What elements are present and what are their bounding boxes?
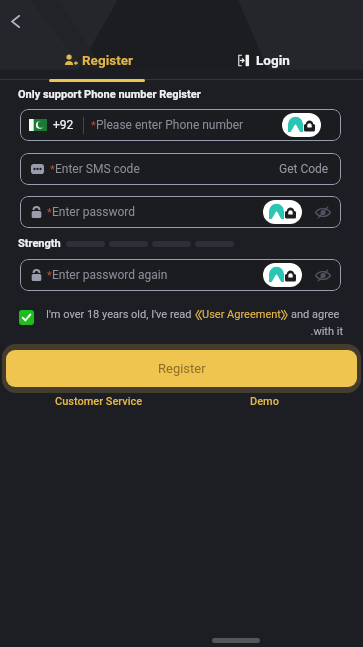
- staticText: Enter password again: [52, 268, 168, 282]
- button[interactable]: Back: [0, 5, 31, 37]
- button[interactable]: Show password: [313, 265, 333, 285]
- staticText: *: [91, 119, 96, 132]
- button[interactable]: Get Code: [279, 162, 329, 176]
- button[interactable]: Register: [64, 49, 133, 71]
- staticText: Customer Service: [55, 395, 143, 408]
- staticText: Enter SMS code: [55, 162, 140, 176]
- staticText: .with it: [46, 325, 343, 338]
- button[interactable]: *: [20, 153, 341, 185]
- button[interactable]: Agree to terms: [19, 310, 34, 325]
- staticText: Get Code: [279, 162, 329, 176]
- button[interactable]: Login: [238, 49, 290, 71]
- staticText: User Agreement: [202, 308, 281, 321]
- staticText: *: [47, 269, 52, 282]
- staticText: Enter password: [52, 205, 136, 219]
- button[interactable]: +92: [20, 109, 341, 141]
- staticText: *: [50, 163, 55, 176]
- button[interactable]: Security verification: [282, 113, 321, 137]
- staticText: Please enter Phone number: [96, 118, 244, 132]
- button[interactable]: *: [20, 196, 341, 228]
- button[interactable]: Security verification: [263, 200, 302, 224]
- button[interactable]: Security verification: [263, 263, 302, 287]
- button[interactable]: Show password: [313, 202, 333, 222]
- staticText: Register: [158, 361, 206, 376]
- staticText: and agree: [291, 308, 340, 321]
- staticText: Register: [82, 52, 133, 68]
- staticText: Demo: [250, 395, 279, 408]
- staticText: Only support Phone number Register: [18, 88, 201, 101]
- button[interactable]: *: [20, 259, 341, 291]
- button[interactable]: Demo: [181, 395, 347, 408]
- button[interactable]: Customer Service: [16, 395, 181, 408]
- staticText: *: [47, 206, 52, 219]
- staticText: +92: [53, 118, 74, 132]
- staticText: Login: [256, 52, 290, 68]
- button[interactable]: Register: [2, 344, 361, 393]
- staticText: I'm over 18 years old, I've read: [46, 308, 192, 321]
- staticText: Strength: [18, 237, 61, 250]
